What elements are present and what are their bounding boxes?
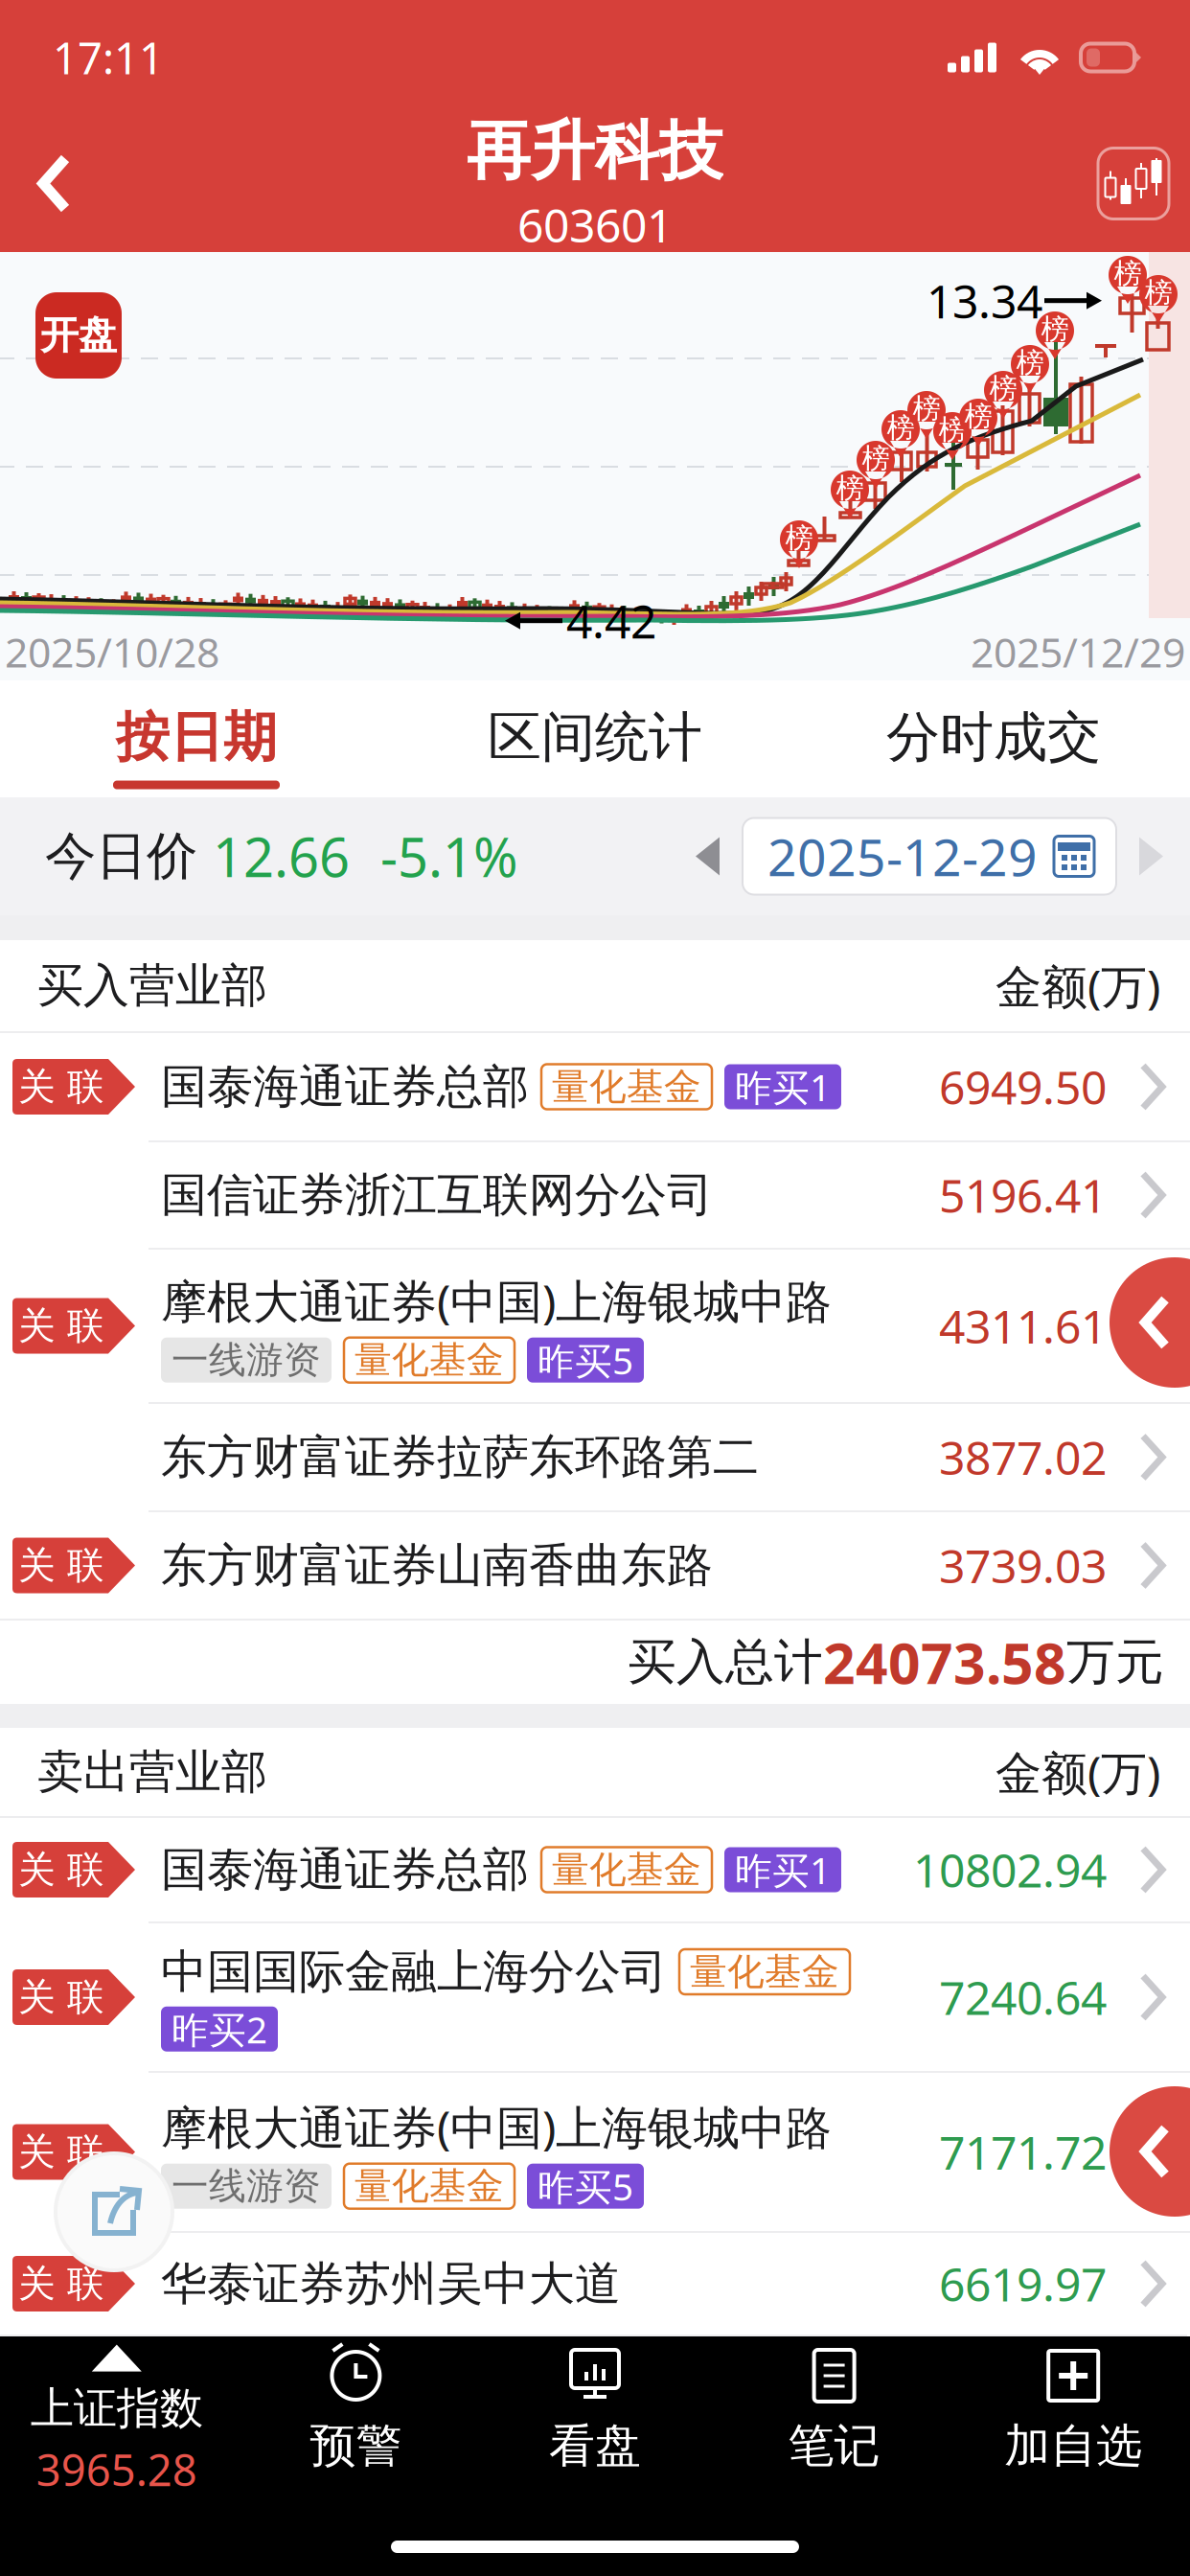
button[interactable]: Next day (1116, 818, 1185, 895)
button[interactable]: 关 联 (0, 2233, 1190, 2334)
staticText: 国泰海通证券总部 (161, 1058, 529, 1116)
staticText: 东方财富证券拉萨东环路第二 (161, 1428, 759, 1486)
button[interactable]: 关 联 (0, 1512, 1190, 1619)
staticText: 榜 (836, 471, 864, 506)
button[interactable]: 区间统计 (396, 680, 794, 797)
staticText: 昨买2 (172, 2004, 267, 2054)
staticText: 昨买5 (538, 1335, 633, 1385)
staticText: 一线游资 (172, 2163, 321, 2209)
button[interactable]: 笔记 (715, 2336, 954, 2505)
staticText: 万元 (1066, 1632, 1164, 1693)
button[interactable]: Expand panel (1110, 1257, 1190, 1388)
staticText: 关 联 (18, 1063, 104, 1110)
staticText: 买入营业部 (37, 957, 267, 1015)
staticText: 关 联 (18, 1542, 104, 1589)
staticText: 榜 (989, 371, 1017, 406)
staticText: 2025/12/29 (971, 624, 1185, 680)
staticText: 量化基金 (552, 1063, 701, 1110)
staticText: 上证指数 (30, 2381, 203, 2436)
staticText: 4311.61 (939, 1295, 1107, 1357)
staticText: 2025-12-29 (767, 821, 1038, 891)
staticText: 榜 (1144, 275, 1172, 310)
staticText: 笔记 (788, 2417, 880, 2475)
staticText: 2025/10/28 (5, 624, 219, 680)
staticText: 603601 (517, 193, 673, 256)
staticText: 昨买1 (735, 1845, 831, 1895)
staticText: 榜 (1114, 256, 1142, 291)
staticText: 开盘 (40, 311, 117, 360)
staticText: 中国国际金融上海分公司 (161, 1943, 667, 2001)
staticText: 买入总计 (628, 1632, 823, 1693)
button[interactable]: 2025-12-29 (743, 818, 1116, 895)
button[interactable]: Open (35, 292, 122, 379)
staticText: 加自选 (1004, 2417, 1142, 2475)
button[interactable]: 看盘 (475, 2336, 715, 2505)
staticText: 榜 (785, 520, 813, 556)
staticText: 榜 (1041, 311, 1069, 347)
staticText: 3739.03 (939, 1534, 1107, 1597)
staticText: 4.42 (566, 589, 656, 652)
staticText: 3965.28 (36, 2440, 197, 2499)
button[interactable]: Share (54, 2151, 174, 2272)
button[interactable]: 东方财富证券拉萨东环路第二 (0, 1404, 1190, 1510)
staticText: 榜 (964, 399, 992, 434)
staticText: 摩根大通证券(中国)上海银城中路 (161, 1269, 832, 1332)
staticText: 榜 (1016, 345, 1044, 380)
button[interactable]: 国信证券浙江互联网分公司 (0, 1142, 1190, 1248)
staticText: 量化基金 (355, 2163, 504, 2209)
staticText: 24073.58 (823, 1624, 1066, 1700)
staticText: 看盘 (549, 2417, 641, 2475)
staticText: 金额(万) (995, 954, 1160, 1017)
staticText: 昨买5 (538, 2161, 633, 2211)
staticText: 一线游资 (172, 1337, 321, 1383)
staticText: 榜 (913, 391, 940, 426)
button[interactable]: K-line chart (1074, 115, 1190, 252)
staticText: 再升科技 (467, 111, 723, 191)
button[interactable]: 关 联 (0, 1923, 1190, 2071)
button[interactable]: 关 联 (0, 1033, 1190, 1140)
staticText: 关 联 (18, 2260, 104, 2307)
staticText: 榜 (887, 410, 915, 446)
staticText: 摩根大通证券(中国)上海银城中路 (161, 2095, 832, 2158)
staticText: 3877.02 (939, 1426, 1107, 1488)
button[interactable]: 加自选 (954, 2336, 1190, 2505)
button[interactable]: Previous day (674, 818, 743, 895)
staticText: -5.1% (380, 820, 518, 893)
staticText: 量化基金 (355, 1337, 504, 1383)
staticText: 6619.97 (939, 2252, 1107, 2315)
staticText: 关 联 (18, 1302, 104, 1349)
button[interactable]: 按日期 (0, 680, 396, 797)
staticText: 6949.50 (939, 1055, 1107, 1118)
button[interactable]: 预警 (236, 2336, 475, 2505)
staticText: 17:11 (53, 28, 164, 87)
staticText: 预警 (310, 2417, 402, 2475)
staticText: 昨买1 (735, 1062, 831, 1112)
staticText: 区间统计 (488, 703, 702, 771)
button[interactable]: 分时成交 (794, 680, 1190, 797)
button[interactable]: 关 联 (0, 2073, 1190, 2231)
staticText: 榜 (938, 412, 966, 448)
staticText: 今日价 (45, 824, 197, 888)
button[interactable]: 关 联 (0, 1818, 1190, 1921)
staticText: 7240.64 (939, 1966, 1107, 2029)
button[interactable]: 关 联 (0, 1250, 1190, 1402)
staticText: 榜 (862, 441, 890, 476)
staticText: 关 联 (18, 1974, 104, 2020)
staticText: 12.66 (213, 820, 350, 893)
staticText: 金额(万) (995, 1741, 1160, 1803)
staticText: 5196.41 (939, 1164, 1107, 1226)
staticText: 10802.94 (913, 1838, 1107, 1901)
button[interactable]: Back (0, 115, 112, 252)
staticText: 7171.72 (939, 2121, 1107, 2183)
staticText: 分时成交 (886, 703, 1101, 771)
button[interactable]: Expand panel (1110, 2086, 1190, 2217)
staticText: 13.34 (927, 269, 1042, 332)
button[interactable]: 上证指数 (0, 2336, 236, 2505)
staticText: 量化基金 (552, 1846, 701, 1893)
staticText: 国泰海通证券总部 (161, 1841, 529, 1899)
staticText: 东方财富证券山南香曲东路 (161, 1536, 713, 1594)
staticText: 关 联 (18, 1846, 104, 1893)
staticText: 关 联 (18, 2129, 104, 2175)
staticText: 按日期 (116, 703, 277, 771)
staticText: 国信证券浙江互联网分公司 (161, 1166, 713, 1224)
